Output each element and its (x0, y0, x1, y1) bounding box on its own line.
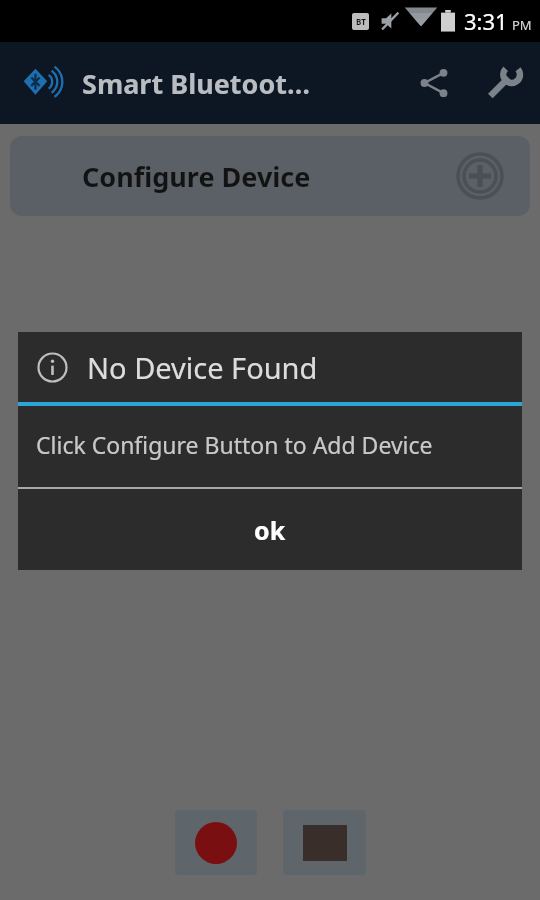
button[interactable]: ok (18, 489, 522, 570)
staticText: No Device Found (87, 348, 318, 387)
button[interactable]: Share (400, 49, 468, 117)
staticText: Click Configure Button to Add Device (36, 429, 433, 460)
staticText: PM (512, 16, 532, 34)
button[interactable]: Record (175, 810, 257, 875)
staticText: ok (254, 513, 286, 547)
button[interactable]: Settings (468, 47, 540, 119)
button[interactable]: Stop (283, 810, 366, 875)
button[interactable]: Configure Device (10, 136, 530, 216)
staticText: Configure Device (82, 158, 311, 195)
staticText: BT (356, 16, 366, 27)
staticText: 3:31 (464, 6, 508, 36)
staticText: Smart Bluetoot… (82, 65, 311, 102)
